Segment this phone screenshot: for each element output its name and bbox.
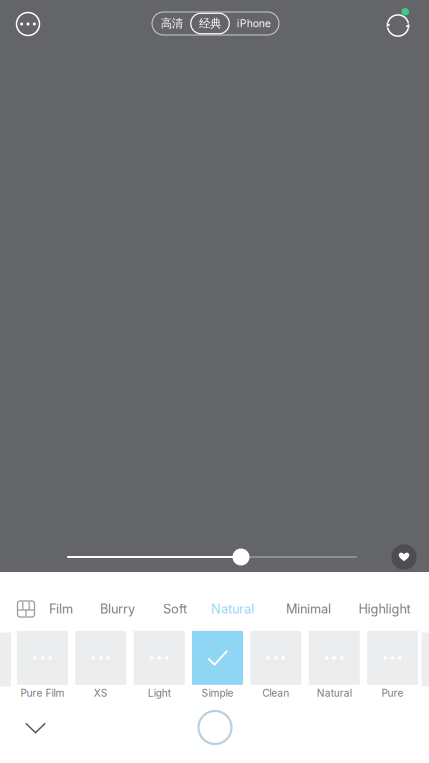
button[interactable]: Natural: [203, 592, 262, 626]
button[interactable]: Favourite: [387, 540, 421, 574]
button[interactable]: Compare with original: [190, 703, 239, 752]
button[interactable]: Pure: [367, 631, 418, 699]
button[interactable]: XS: [75, 631, 126, 699]
staticText: Highlight: [358, 601, 410, 617]
staticText: Light: [148, 687, 171, 699]
button[interactable]: Blurry: [92, 592, 143, 626]
button[interactable]: Highlight: [350, 592, 418, 626]
button[interactable]: Natural: [309, 631, 360, 699]
button[interactable]: Minimal: [278, 592, 339, 626]
button[interactable]: Soft: [155, 592, 195, 626]
button[interactable]: All filter packs: [9, 593, 42, 625]
staticText: Natural: [317, 687, 352, 699]
staticText: Natural: [211, 601, 254, 617]
staticText: Clean: [262, 687, 289, 699]
staticText: Film: [49, 601, 73, 617]
staticText: Minimal: [286, 601, 331, 617]
staticText: Pure Film: [20, 687, 64, 699]
staticText: Simple: [201, 687, 233, 699]
button[interactable]: Film: [41, 592, 81, 626]
staticText: Pure: [381, 687, 403, 699]
staticText: XS: [94, 687, 108, 699]
staticText: Blurry: [100, 601, 135, 617]
button[interactable]: 经典: [191, 12, 229, 35]
button[interactable]: More options: [13, 9, 43, 39]
button[interactable]: Collapse panel: [15, 712, 56, 743]
button[interactable]: 高清: [153, 12, 191, 35]
button[interactable]: Simple: [192, 631, 243, 699]
staticText: 经典: [199, 16, 221, 31]
staticText: Soft: [163, 601, 187, 617]
staticText: iPhone: [237, 17, 271, 30]
button[interactable]: Light: [134, 631, 185, 699]
staticText: 高清: [161, 16, 183, 31]
button[interactable]: Switch preview mode: [381, 6, 417, 42]
button[interactable]: Pure Film: [17, 631, 68, 699]
button[interactable]: Clean: [250, 631, 301, 699]
button[interactable]: iPhone: [229, 12, 278, 35]
